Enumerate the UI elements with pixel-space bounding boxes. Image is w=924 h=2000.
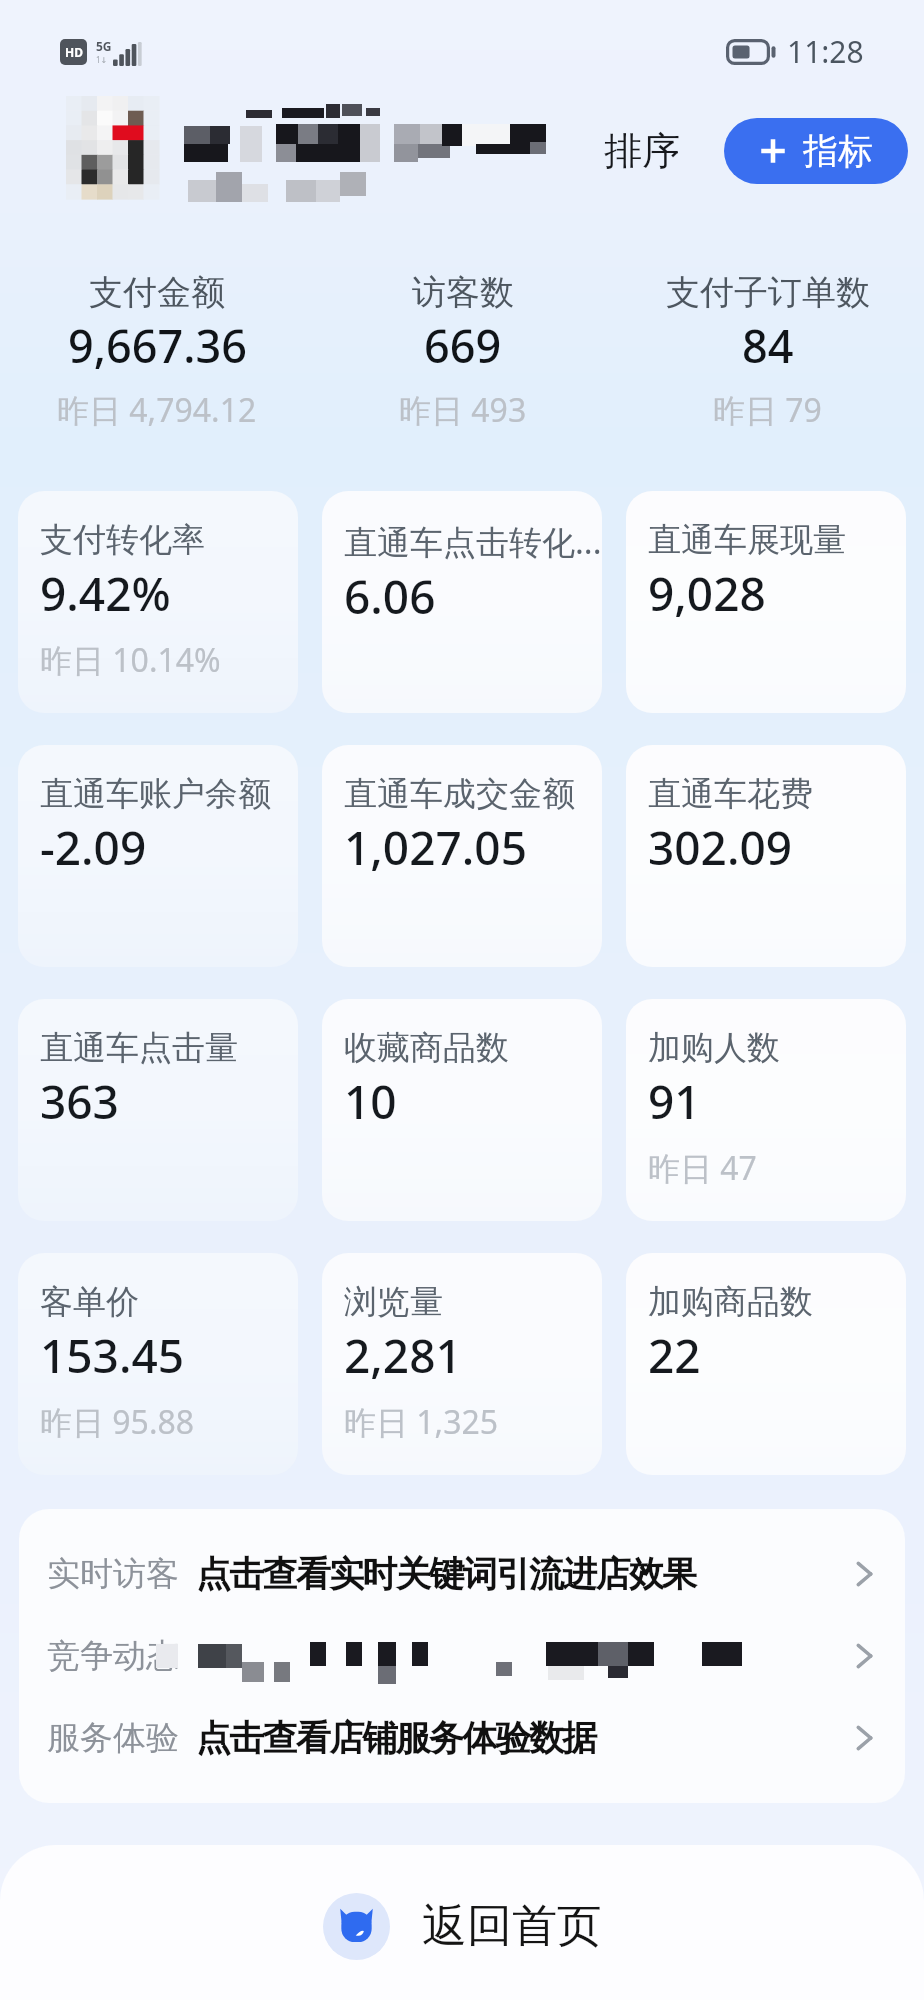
button[interactable]: 排序 <box>594 113 690 189</box>
staticText: 访客数 <box>412 271 514 314</box>
staticText: -2.09 <box>40 816 147 879</box>
button[interactable]: 添加指标 <box>724 118 908 184</box>
staticText: 昨日 47 <box>648 1146 757 1190</box>
button[interactable]: 竞争动态 <box>19 1615 905 1697</box>
staticText: 客单价 <box>40 1281 139 1323</box>
staticText: 昨日 10.14% <box>40 638 221 682</box>
button[interactable]: 直通车点击量 <box>18 999 298 1221</box>
staticText: 5G <box>96 38 112 54</box>
staticText: 2,281 <box>344 1324 462 1387</box>
staticText: 返回首页 <box>422 1898 602 1955</box>
staticText: 6.06 <box>344 565 436 628</box>
staticText: 9,667.36 <box>68 315 247 376</box>
staticText: 昨日 493 <box>399 388 527 432</box>
staticText: 363 <box>40 1070 119 1133</box>
staticText: 11:28 <box>787 31 864 72</box>
staticText: 直通车成交金额 <box>344 773 575 815</box>
staticText: 直通车账户余额 <box>40 773 271 815</box>
staticText: 加购人数 <box>648 1027 780 1069</box>
staticText: 昨日 1,325 <box>344 1400 499 1444</box>
staticText: 点击查看店铺服务体验数据 <box>196 1716 841 1760</box>
staticText: 直通车点击量 <box>40 1027 238 1069</box>
staticText: 服务体验 <box>47 1717 179 1759</box>
button[interactable]: 加购人数 <box>626 999 906 1221</box>
button[interactable]: 收藏商品数 <box>322 999 602 1221</box>
button[interactable]: 直通车花费 <box>626 745 906 967</box>
button[interactable]: 访客数 <box>310 271 615 432</box>
staticText: 直通车点击转化... <box>344 519 600 564</box>
button[interactable]: 支付子订单数 <box>615 271 920 432</box>
button[interactable]: 服务体验 <box>19 1697 905 1779</box>
staticText: 91 <box>648 1070 701 1133</box>
staticText: 昨日 4,794.12 <box>57 388 257 432</box>
staticText: 竞争动态 <box>47 1635 179 1677</box>
button[interactable]: 店铺头像 <box>66 96 159 199</box>
staticText: 22 <box>648 1324 701 1387</box>
button[interactable]: 直通车点击转化... <box>322 491 602 713</box>
staticText: 支付转化率 <box>40 519 205 561</box>
button[interactable]: 客单价 <box>18 1253 298 1475</box>
staticText: 1↓ <box>96 54 108 65</box>
button[interactable]: 直通车账户余额 <box>18 745 298 967</box>
staticText: 支付金额 <box>89 271 225 314</box>
staticText: 直通车展现量 <box>648 519 846 561</box>
staticText: 10 <box>344 1070 397 1133</box>
staticText: 302.09 <box>648 816 793 879</box>
button[interactable]: 直通车展现量 <box>626 491 906 713</box>
button[interactable]: 支付金额 <box>4 271 310 432</box>
staticText: 9,028 <box>648 562 766 625</box>
staticText: 点击查看实时关键词引流进店效果 <box>196 1552 841 1596</box>
staticText: 昨日 95.88 <box>40 1400 195 1444</box>
staticText: HD <box>65 44 83 60</box>
staticText: 实时访客 <box>47 1553 179 1595</box>
staticText: 支付子订单数 <box>666 271 870 314</box>
staticText: 昨日 79 <box>713 388 822 432</box>
button[interactable]: 返回首页 <box>0 1845 924 2000</box>
button[interactable]: 浏览量 <box>322 1253 602 1475</box>
staticText: 收藏商品数 <box>344 1027 509 1069</box>
staticText: 669 <box>424 315 502 376</box>
button[interactable]: 支付转化率 <box>18 491 298 713</box>
staticText: 1,027.05 <box>344 816 527 879</box>
button[interactable]: 加购商品数 <box>626 1253 906 1475</box>
staticText: 浏览量 <box>344 1281 443 1323</box>
staticText: 指标 <box>803 129 873 173</box>
staticText: 直通车花费 <box>648 773 813 815</box>
staticText: 9.42% <box>40 562 171 625</box>
button[interactable]: 实时访客 <box>19 1533 905 1615</box>
staticText: 排序 <box>604 127 680 175</box>
staticText: 153.45 <box>40 1324 185 1387</box>
button[interactable]: 直通车成交金额 <box>322 745 602 967</box>
staticText: 加购商品数 <box>648 1281 813 1323</box>
staticText: 84 <box>742 315 794 376</box>
